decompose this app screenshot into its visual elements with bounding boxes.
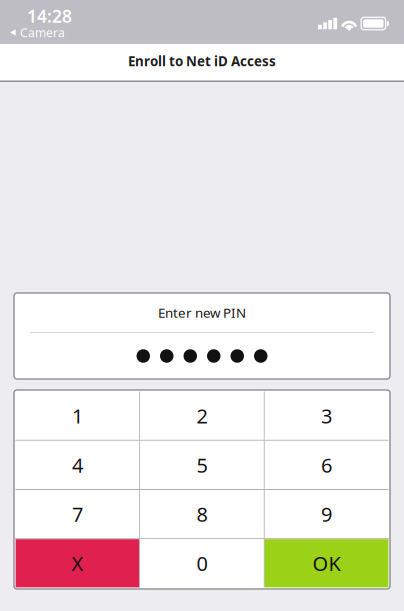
staticText: 4 xyxy=(72,452,83,478)
staticText: 7 xyxy=(72,501,83,527)
button[interactable]: 0 xyxy=(140,539,264,587)
staticText: OK xyxy=(313,550,341,577)
staticText: X xyxy=(71,550,83,577)
staticText: 8 xyxy=(196,501,207,527)
button[interactable]: 5 xyxy=(140,441,264,489)
staticText: Enroll to Net iD Access xyxy=(128,52,276,70)
staticText: 9 xyxy=(321,501,332,527)
staticText: 1 xyxy=(72,402,83,429)
button[interactable]: X xyxy=(16,539,139,587)
button[interactable]: 9 xyxy=(265,490,388,538)
button[interactable]: Camera xyxy=(10,26,65,39)
button[interactable]: 1 xyxy=(16,392,139,440)
staticText: 2 xyxy=(196,402,207,429)
staticText: 5 xyxy=(196,452,207,478)
button[interactable]: 2 xyxy=(140,392,264,440)
staticText: Camera xyxy=(20,24,65,40)
staticText: 3 xyxy=(321,402,332,429)
staticText: Enter new PIN xyxy=(158,304,246,321)
button[interactable]: 6 xyxy=(265,441,388,489)
button[interactable]: 4 xyxy=(16,441,139,489)
staticText: 0 xyxy=(196,550,207,577)
button[interactable]: 7 xyxy=(16,490,139,538)
button[interactable]: 8 xyxy=(140,490,264,538)
button[interactable]: 3 xyxy=(265,392,388,440)
button[interactable]: OK xyxy=(265,539,388,587)
staticText: 14:28 xyxy=(27,4,72,27)
staticText: 6 xyxy=(321,452,332,478)
